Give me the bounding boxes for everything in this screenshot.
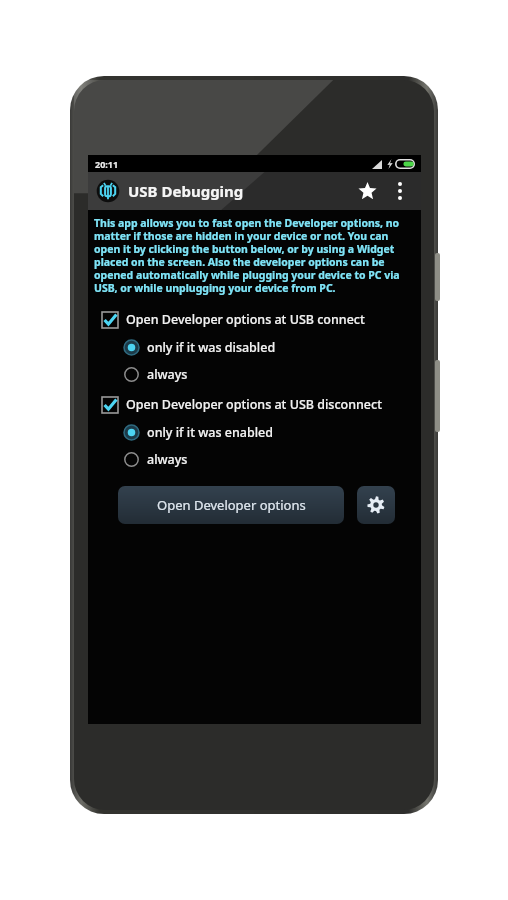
button[interactable]: Settings	[357, 486, 395, 524]
staticText: Open Developer options at USB disconnect	[126, 396, 382, 413]
button[interactable]: always	[88, 446, 421, 473]
staticText: This app allows you to fast open the Dev…	[94, 216, 412, 295]
button[interactable]: Open Developer options at USB connect	[88, 305, 421, 334]
staticText: only if it was enabled	[147, 424, 273, 441]
button[interactable]: only if it was enabled	[88, 419, 421, 446]
button[interactable]: More options	[385, 176, 415, 206]
staticText: always	[147, 366, 188, 383]
staticText: only if it was disabled	[147, 339, 276, 356]
staticText: USB Debugging	[128, 181, 244, 201]
staticText: Open Developer options	[157, 496, 306, 514]
staticText: always	[147, 451, 188, 468]
staticText: 20:11	[95, 158, 119, 170]
button[interactable]: Open Developer options at USB disconnect	[88, 390, 421, 419]
button[interactable]: only if it was disabled	[88, 334, 421, 361]
button[interactable]: Open Developer options	[118, 486, 344, 524]
button[interactable]: Favorite	[349, 173, 385, 209]
button[interactable]: always	[88, 361, 421, 388]
staticText: Open Developer options at USB connect	[126, 311, 365, 328]
